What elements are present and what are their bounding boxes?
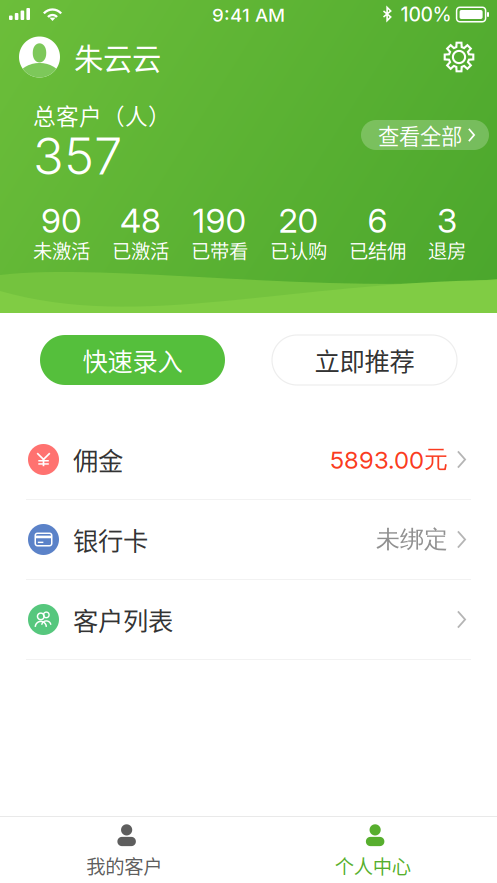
staticText: 9:41 AM [212,4,285,26]
button[interactable]: 佣金 [0,420,497,500]
staticText: 20 [278,200,318,241]
staticText: 客户列表 [73,601,173,638]
staticText: 立即推荐 [314,342,414,378]
staticText: 190 [192,200,246,241]
staticText: 总客户（人） [33,99,171,131]
staticText: 90 [41,200,82,241]
staticText: 佣金 [73,441,123,478]
staticText: 未绑定 [376,524,448,555]
staticText: 未激活 [33,236,90,264]
staticText: 357 [33,125,122,187]
button[interactable]: 立即推荐 [272,335,457,385]
staticText: 查看全部 [378,120,462,150]
staticText: 6 [367,200,387,241]
button[interactable]: 个人中心 [248,817,497,883]
staticText: 我的客户 [86,851,162,879]
staticText: 已认购 [270,236,327,264]
staticText: 5893.00元 [330,444,448,475]
staticText: 3 [437,200,457,241]
staticText: 已激活 [112,236,169,264]
staticText: 朱云云 [74,36,161,78]
staticText: 48 [120,200,161,241]
button[interactable]: 快速录入 [40,335,225,385]
button[interactable]: 银行卡 [0,500,497,580]
button[interactable]: 查看全部 [361,120,489,150]
button[interactable]: 设置 [439,37,479,77]
staticText: 退房 [428,236,466,264]
button[interactable]: 我的客户 [0,817,248,883]
staticText: 快速录入 [82,342,182,378]
staticText: 100% [401,3,452,26]
staticText: 个人中心 [335,851,411,879]
staticText: 已带看 [191,236,248,264]
staticText: 已结佣 [349,236,406,264]
button[interactable]: 客户列表 [0,580,497,660]
staticText: 银行卡 [73,521,148,558]
